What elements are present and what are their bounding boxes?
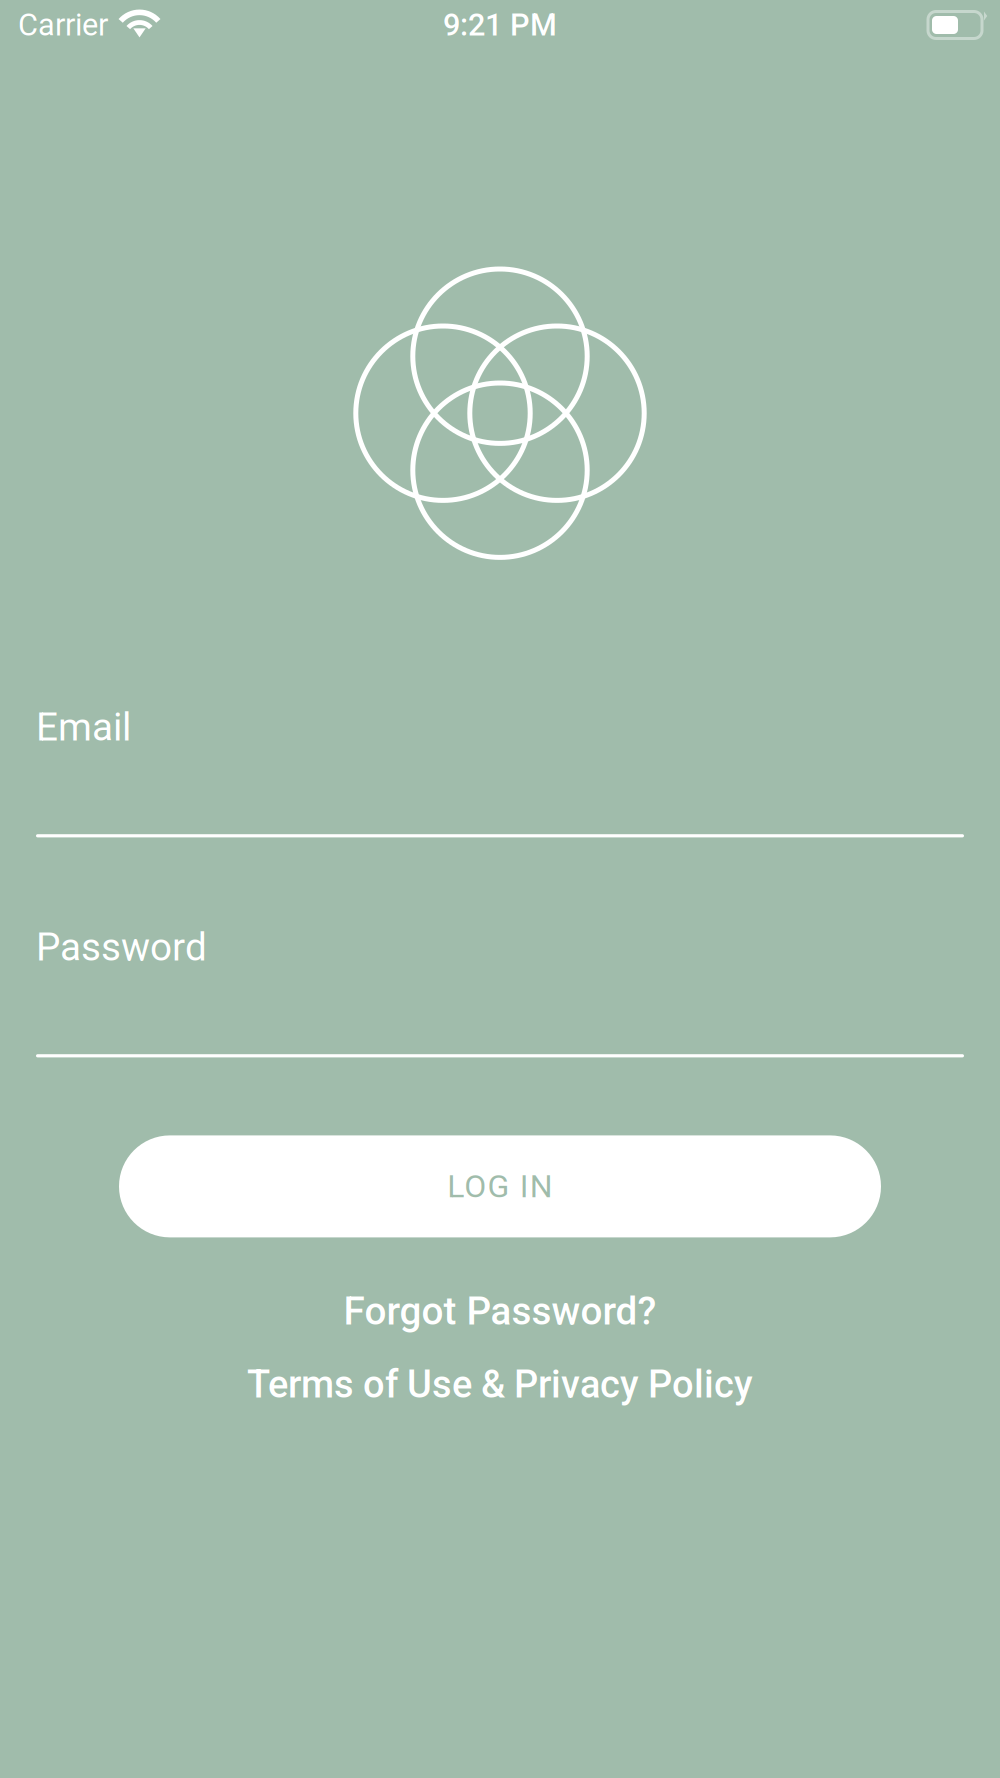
button[interactable]: Email	[36, 707, 964, 837]
staticText: Forgot Password?	[343, 1289, 656, 1334]
staticText: 9:21 PM	[443, 7, 557, 43]
button[interactable]: Terms of Use & Privacy Policy	[190, 1362, 810, 1406]
staticText: Email	[36, 705, 131, 750]
button[interactable]: LOG IN	[119, 1135, 881, 1237]
staticText: Password	[36, 925, 207, 970]
staticText: Carrier	[18, 7, 108, 43]
button[interactable]: Forgot Password?	[290, 1289, 710, 1333]
staticText: Terms of Use & Privacy Policy	[247, 1362, 753, 1407]
staticText: LOG IN	[447, 1168, 553, 1205]
button[interactable]: Password	[36, 927, 964, 1057]
